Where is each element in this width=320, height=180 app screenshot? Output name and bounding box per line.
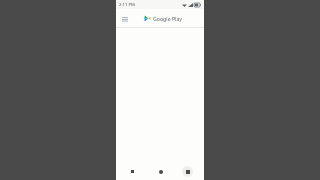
button[interactable]: Recent apps <box>182 166 193 177</box>
button[interactable]: Google Play <box>144 15 182 22</box>
button[interactable]: Open navigation menu <box>119 13 130 24</box>
staticText: Google Play <box>153 15 182 22</box>
staticText: 2:11 PM <box>119 2 135 8</box>
button[interactable]: Back <box>127 166 138 177</box>
button[interactable]: Home <box>155 166 166 177</box>
